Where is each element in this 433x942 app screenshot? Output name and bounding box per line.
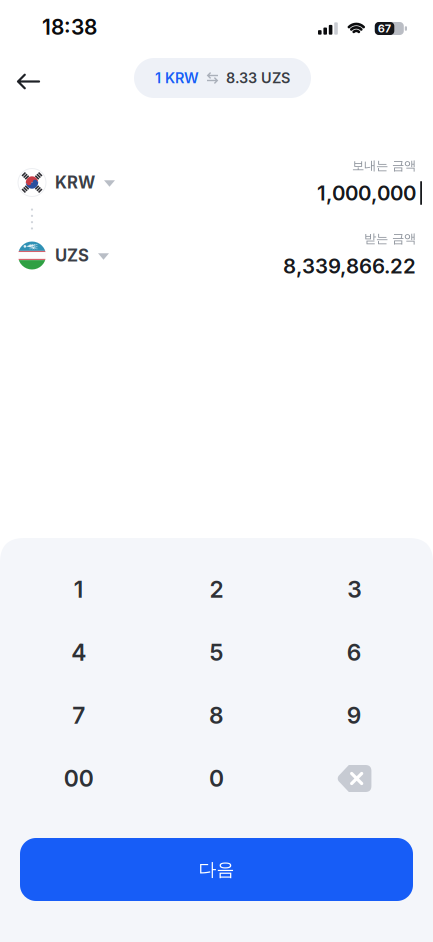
button[interactable]: 6 [285,621,423,684]
staticText: 0 [209,765,224,792]
button[interactable]: Select sending currency, KRW [18,168,115,196]
staticText: 8,339,866.22 [283,254,416,278]
button[interactable]: 7 [10,684,148,747]
staticText: 6 [347,639,362,666]
staticText: 00 [64,765,94,792]
staticText: 8.33 UZS [226,69,290,87]
staticText: 8 [209,702,224,729]
button[interactable]: 2 [148,558,285,621]
staticText: 7 [72,702,85,729]
staticText: 5 [209,639,223,666]
staticText: 보내는 금액 [352,158,416,173]
staticText: UZS [55,245,89,266]
button[interactable]: 5 [148,621,285,684]
button[interactable]: 다음 [20,838,413,901]
button[interactable]: 4 [10,621,148,684]
button[interactable]: Back [0,52,39,104]
staticText: 다음 [198,858,234,881]
staticText: 2 [209,576,223,603]
staticText: 4 [71,639,86,666]
button[interactable]: 3 [285,558,423,621]
staticText: 1 [74,576,84,603]
staticText: 1,000,000 [317,181,416,205]
staticText: 9 [347,702,362,729]
button[interactable]: 0 [148,747,285,810]
button[interactable]: Delete [285,747,423,810]
staticText: KRW [55,172,95,193]
button[interactable]: 00 [10,747,148,810]
staticText: 67 [378,22,391,35]
button[interactable]: 1 [10,558,148,621]
button[interactable]: 9 [285,684,423,747]
staticText: 3 [347,576,361,603]
staticText: 받는 금액 [364,231,416,246]
button[interactable]: 8 [148,684,285,747]
staticText: 1 KRW [155,69,199,87]
staticText: 18:38 [42,14,97,40]
button[interactable]: Exchange rate 1 KRW = 8.33 UZS [128,58,305,98]
button[interactable]: Select receiving currency, UZS [18,241,109,269]
